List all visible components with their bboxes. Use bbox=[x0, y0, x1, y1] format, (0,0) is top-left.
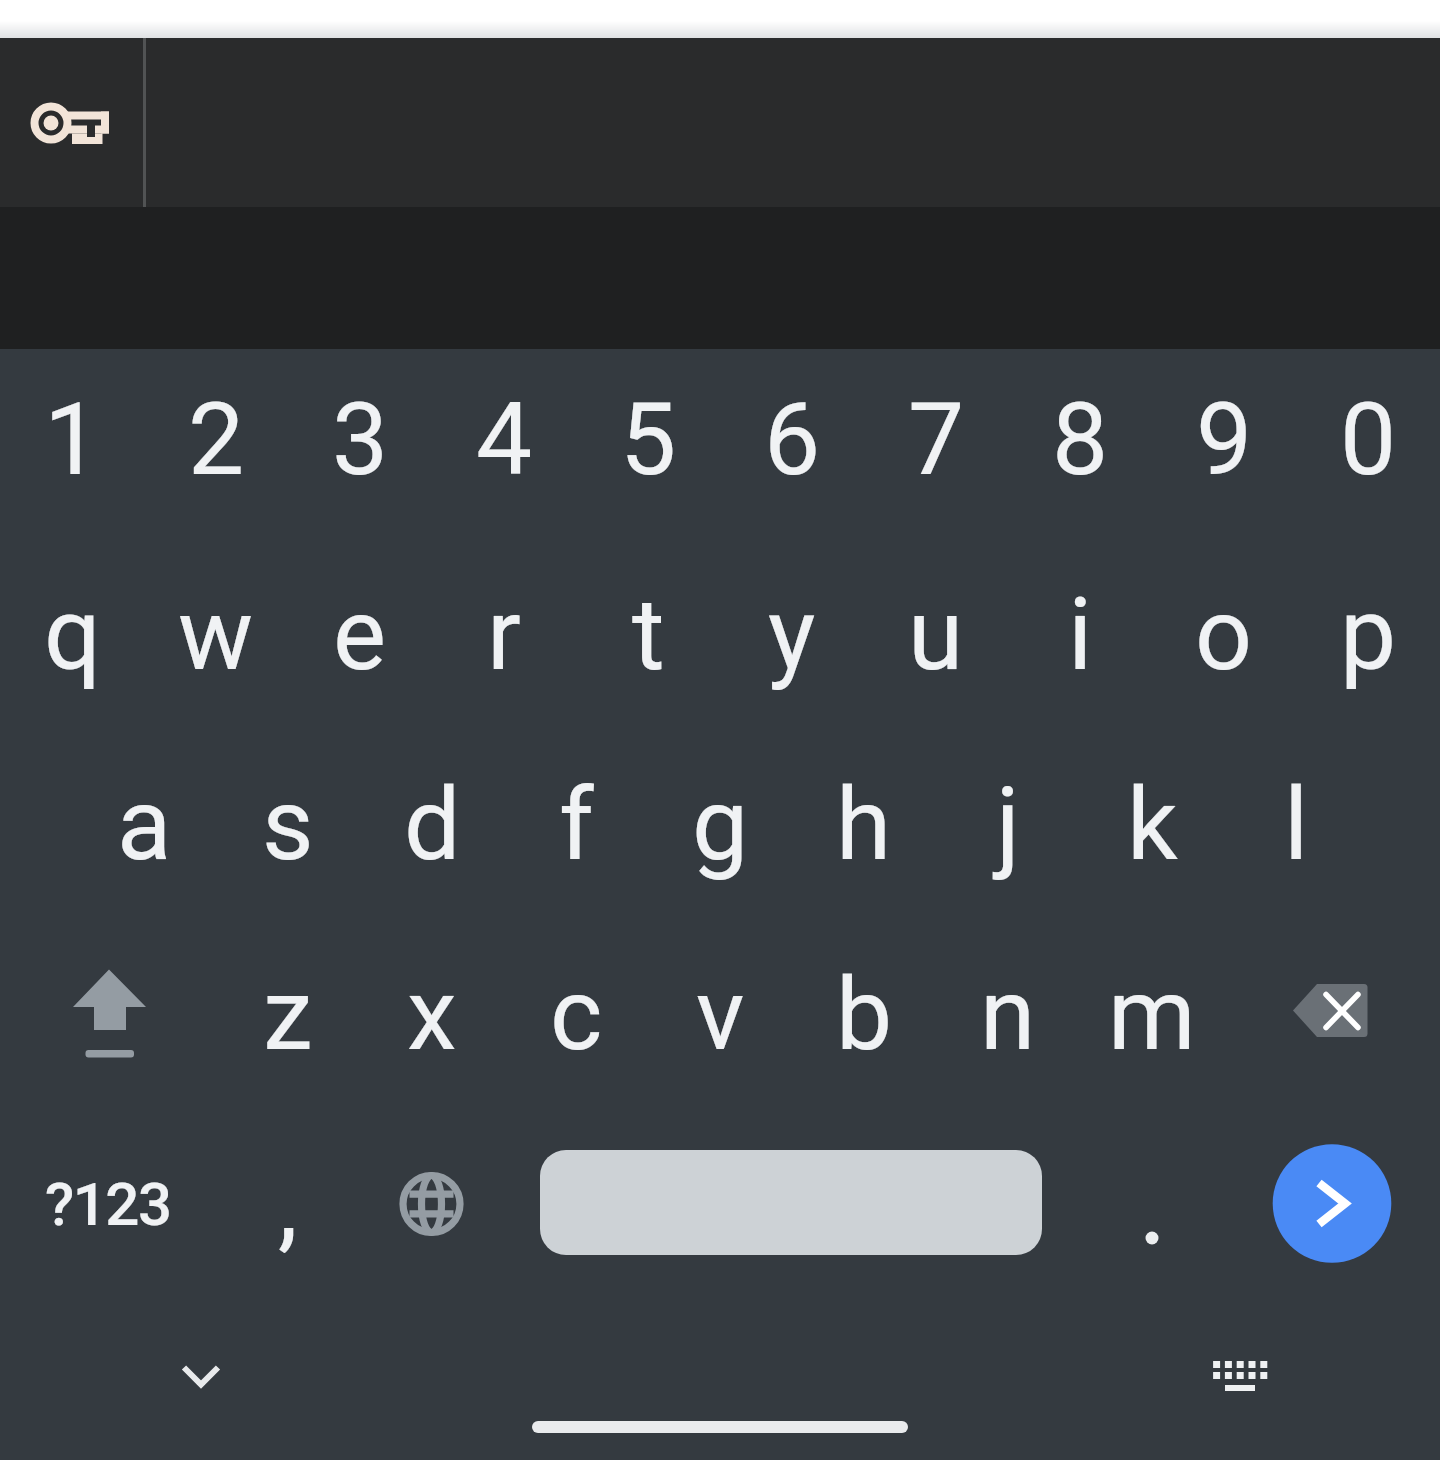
button[interactable]: c bbox=[504, 919, 648, 1109]
button[interactable] bbox=[129, 1305, 273, 1445]
staticText: q bbox=[44, 576, 101, 693]
button[interactable] bbox=[1167, 1305, 1311, 1445]
staticText: y bbox=[768, 576, 816, 693]
staticText: ?123 bbox=[45, 1169, 171, 1239]
staticText: 6 bbox=[764, 381, 821, 498]
staticText: x bbox=[407, 956, 457, 1073]
button[interactable]: x bbox=[360, 919, 504, 1109]
button[interactable] bbox=[360, 1109, 504, 1299]
staticText: d bbox=[404, 766, 461, 883]
staticText: c bbox=[550, 956, 603, 1073]
button[interactable]: g bbox=[648, 729, 792, 919]
button[interactable]: 5 bbox=[576, 344, 720, 534]
button[interactable]: 7 bbox=[864, 344, 1008, 534]
staticText: a bbox=[117, 766, 172, 883]
staticText: 1 bbox=[44, 381, 101, 498]
staticText: k bbox=[1127, 766, 1178, 883]
button[interactable]: , bbox=[216, 1109, 360, 1299]
button[interactable] bbox=[1080, 1109, 1224, 1299]
button[interactable]: u bbox=[864, 539, 1008, 729]
staticText: h bbox=[836, 766, 892, 883]
button[interactable]: q bbox=[0, 539, 144, 729]
staticText: 9 bbox=[1196, 381, 1253, 498]
button[interactable] bbox=[532, 1421, 908, 1433]
button[interactable]: m bbox=[1080, 919, 1224, 1109]
button[interactable]: a bbox=[72, 729, 216, 919]
staticText: 2 bbox=[188, 381, 245, 498]
staticText: 7 bbox=[908, 381, 965, 498]
staticText: o bbox=[1195, 576, 1253, 693]
staticText: f bbox=[559, 766, 594, 883]
button[interactable]: i bbox=[1008, 539, 1152, 729]
staticText: m bbox=[1108, 956, 1196, 1073]
button[interactable]: n bbox=[936, 919, 1080, 1109]
button[interactable]: 6 bbox=[720, 344, 864, 534]
staticText: z bbox=[263, 956, 313, 1073]
button[interactable] bbox=[1224, 1109, 1440, 1299]
staticText: , bbox=[278, 1146, 298, 1263]
staticText: g bbox=[692, 766, 749, 883]
button[interactable]: 0 bbox=[1296, 344, 1440, 534]
button[interactable]: b bbox=[792, 919, 936, 1109]
staticText: l bbox=[1284, 766, 1309, 883]
button[interactable]: h bbox=[792, 729, 936, 919]
staticText: 5 bbox=[620, 381, 677, 498]
button[interactable] bbox=[1224, 919, 1440, 1109]
staticText: 0 bbox=[1340, 381, 1397, 498]
button[interactable]: 9 bbox=[1152, 344, 1296, 534]
staticText: b bbox=[836, 956, 893, 1073]
button[interactable]: p bbox=[1296, 539, 1440, 729]
staticText: 8 bbox=[1052, 381, 1109, 498]
staticText: e bbox=[333, 576, 387, 693]
staticText: j bbox=[996, 766, 1020, 883]
staticText: u bbox=[908, 576, 964, 693]
staticText: i bbox=[1068, 576, 1093, 693]
staticText: r bbox=[487, 576, 521, 693]
button[interactable]: 2 bbox=[144, 344, 288, 534]
staticText: t bbox=[632, 576, 665, 693]
button[interactable]: 3 bbox=[288, 344, 432, 534]
button[interactable]: z bbox=[216, 919, 360, 1109]
button[interactable]: l bbox=[1224, 729, 1368, 919]
staticText: n bbox=[980, 956, 1036, 1073]
button[interactable]: t bbox=[576, 539, 720, 729]
button[interactable]: k bbox=[1080, 729, 1224, 919]
button[interactable]: 8 bbox=[1008, 344, 1152, 534]
staticText: 3 bbox=[332, 381, 389, 498]
button[interactable] bbox=[540, 1150, 1042, 1255]
button[interactable]: j bbox=[936, 729, 1080, 919]
button[interactable]: ?123 bbox=[0, 1109, 216, 1299]
button[interactable] bbox=[0, 919, 216, 1109]
button[interactable] bbox=[0, 38, 143, 207]
staticText: s bbox=[262, 766, 314, 883]
button[interactable]: 1 bbox=[0, 344, 144, 534]
button[interactable]: d bbox=[360, 729, 504, 919]
button[interactable]: s bbox=[216, 729, 360, 919]
staticText: p bbox=[1340, 576, 1397, 693]
button[interactable]: 4 bbox=[432, 344, 576, 534]
staticText: w bbox=[178, 576, 254, 693]
button[interactable]: y bbox=[720, 539, 864, 729]
button[interactable]: w bbox=[144, 539, 288, 729]
button[interactable]: v bbox=[648, 919, 792, 1109]
staticText: v bbox=[696, 956, 745, 1073]
button[interactable]: f bbox=[504, 729, 648, 919]
staticText: 4 bbox=[476, 381, 533, 498]
button[interactable]: e bbox=[288, 539, 432, 729]
button[interactable]: o bbox=[1152, 539, 1296, 729]
button[interactable]: r bbox=[432, 539, 576, 729]
